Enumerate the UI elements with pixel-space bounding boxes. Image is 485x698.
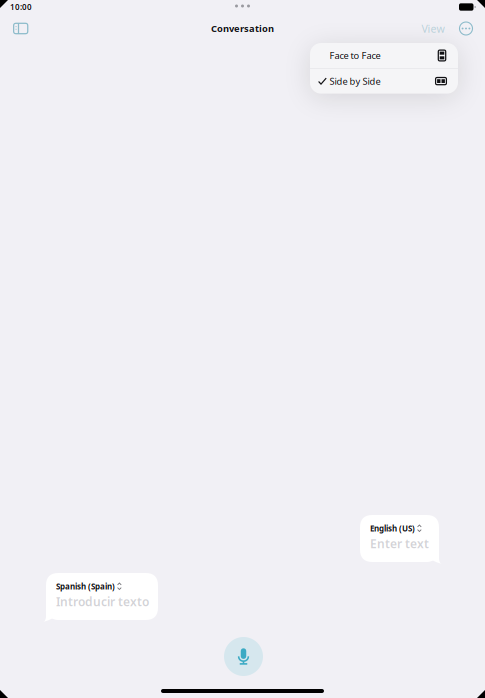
button[interactable]: Spanish (Spain) bbox=[43, 573, 158, 622]
button[interactable]: View bbox=[421, 18, 444, 38]
button[interactable]: Face to Face bbox=[310, 43, 458, 68]
button[interactable]: English (US) bbox=[360, 515, 442, 564]
staticText: English (US) bbox=[370, 523, 415, 534]
button[interactable]: Side by Side bbox=[310, 69, 458, 94]
staticText: Introducir texto bbox=[56, 594, 149, 609]
staticText: Side by Side bbox=[329, 75, 380, 87]
button[interactable]: Record bbox=[224, 637, 263, 676]
button[interactable]: Show Sidebar bbox=[10, 18, 31, 38]
staticText: Face to Face bbox=[329, 49, 380, 62]
button[interactable]: More bbox=[456, 18, 476, 38]
staticText: View bbox=[421, 21, 444, 36]
staticText: Enter text bbox=[370, 536, 429, 551]
staticText: Spanish (Spain) bbox=[56, 581, 115, 592]
staticText: Conversation bbox=[211, 22, 274, 35]
staticText: 10:00 bbox=[10, 2, 32, 12]
